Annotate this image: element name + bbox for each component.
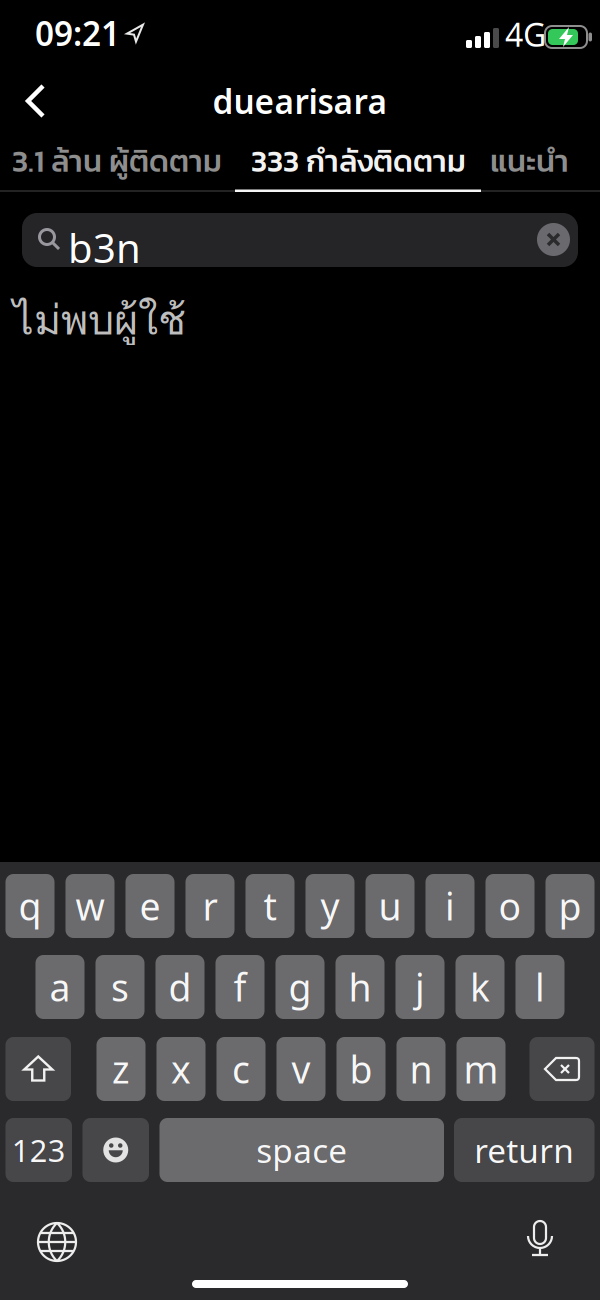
button[interactable]: l [515,955,564,1019]
button[interactable]: Next keyboard [37,1222,77,1262]
staticText: แนะนำ [490,138,569,184]
staticText: s [111,962,129,1012]
button[interactable]: 333 กำลังติดตาม [251,138,466,184]
button[interactable]: x [156,1037,205,1101]
button[interactable]: Search [22,213,578,267]
button[interactable]: Dictate [527,1220,553,1257]
staticText: k [470,962,490,1012]
button[interactable]: u [365,874,414,938]
staticText: p [558,881,581,931]
staticText: j [415,962,425,1012]
staticText: f [233,962,246,1012]
button[interactable]: z [96,1037,145,1101]
staticText: n [409,1044,432,1094]
staticText: ไม่พบผู้ใช้ [13,287,186,353]
button[interactable]: p [545,874,594,938]
button[interactable]: d [155,955,204,1019]
button[interactable]: Delete [529,1037,594,1101]
staticText: 3.1 ล้าน ผู้ติดตาม [12,138,222,184]
staticText: x [171,1044,191,1094]
button[interactable]: Shift [5,1037,71,1101]
staticText: b3n [68,221,141,274]
button[interactable]: q [5,874,54,938]
staticText: z [112,1044,130,1094]
staticText: u [378,881,401,931]
staticText: l [535,962,545,1012]
staticText: m [463,1044,498,1094]
button[interactable]: c [216,1037,265,1101]
button[interactable]: n [396,1037,445,1101]
button[interactable]: แนะนำ [490,138,569,184]
button[interactable]: 3.1 ล้าน ผู้ติดตาม [12,138,222,184]
button[interactable]: s [95,955,144,1019]
button[interactable]: Emoji [82,1118,149,1182]
staticText: i [445,881,455,931]
staticText: h [348,962,371,1012]
button[interactable]: v [276,1037,325,1101]
staticText: o [498,881,521,931]
button[interactable]: r [185,874,234,938]
button[interactable]: h [335,955,384,1019]
button[interactable]: k [455,955,504,1019]
button[interactable]: i [425,874,474,938]
staticText: b [349,1044,372,1094]
button[interactable]: 123 [5,1118,72,1182]
button[interactable]: w [65,874,114,938]
staticText: r [202,881,217,931]
staticText: 123 [12,1130,66,1170]
staticText: duearisara [212,79,387,123]
button[interactable]: e [125,874,174,938]
button[interactable]: j [395,955,444,1019]
staticText: t [263,881,276,931]
button[interactable]: y [305,874,354,938]
button[interactable]: m [456,1037,505,1101]
staticText: g [288,962,311,1012]
staticText: y [320,881,339,931]
staticText: q [18,881,41,931]
button[interactable]: a [35,955,84,1019]
staticText: e [139,881,160,931]
staticText: d [168,962,191,1012]
button[interactable]: return [454,1118,594,1182]
staticText: c [232,1044,250,1094]
button[interactable]: Back [14,79,58,123]
staticText: space [256,1128,347,1172]
button[interactable]: t [245,874,294,938]
staticText: a [49,962,70,1012]
button[interactable]: f [215,955,264,1019]
staticText: 333 กำลังติดตาม [251,138,466,184]
staticText: 4G [505,13,546,55]
staticText: return [474,1128,574,1172]
button[interactable]: b [336,1037,385,1101]
button[interactable]: g [275,955,324,1019]
staticText: w [75,881,104,931]
staticText: 09:21 [35,11,120,55]
button[interactable]: space [159,1118,444,1182]
staticText: v [291,1044,310,1094]
button[interactable]: Clear search [537,223,570,256]
button[interactable]: o [485,874,534,938]
